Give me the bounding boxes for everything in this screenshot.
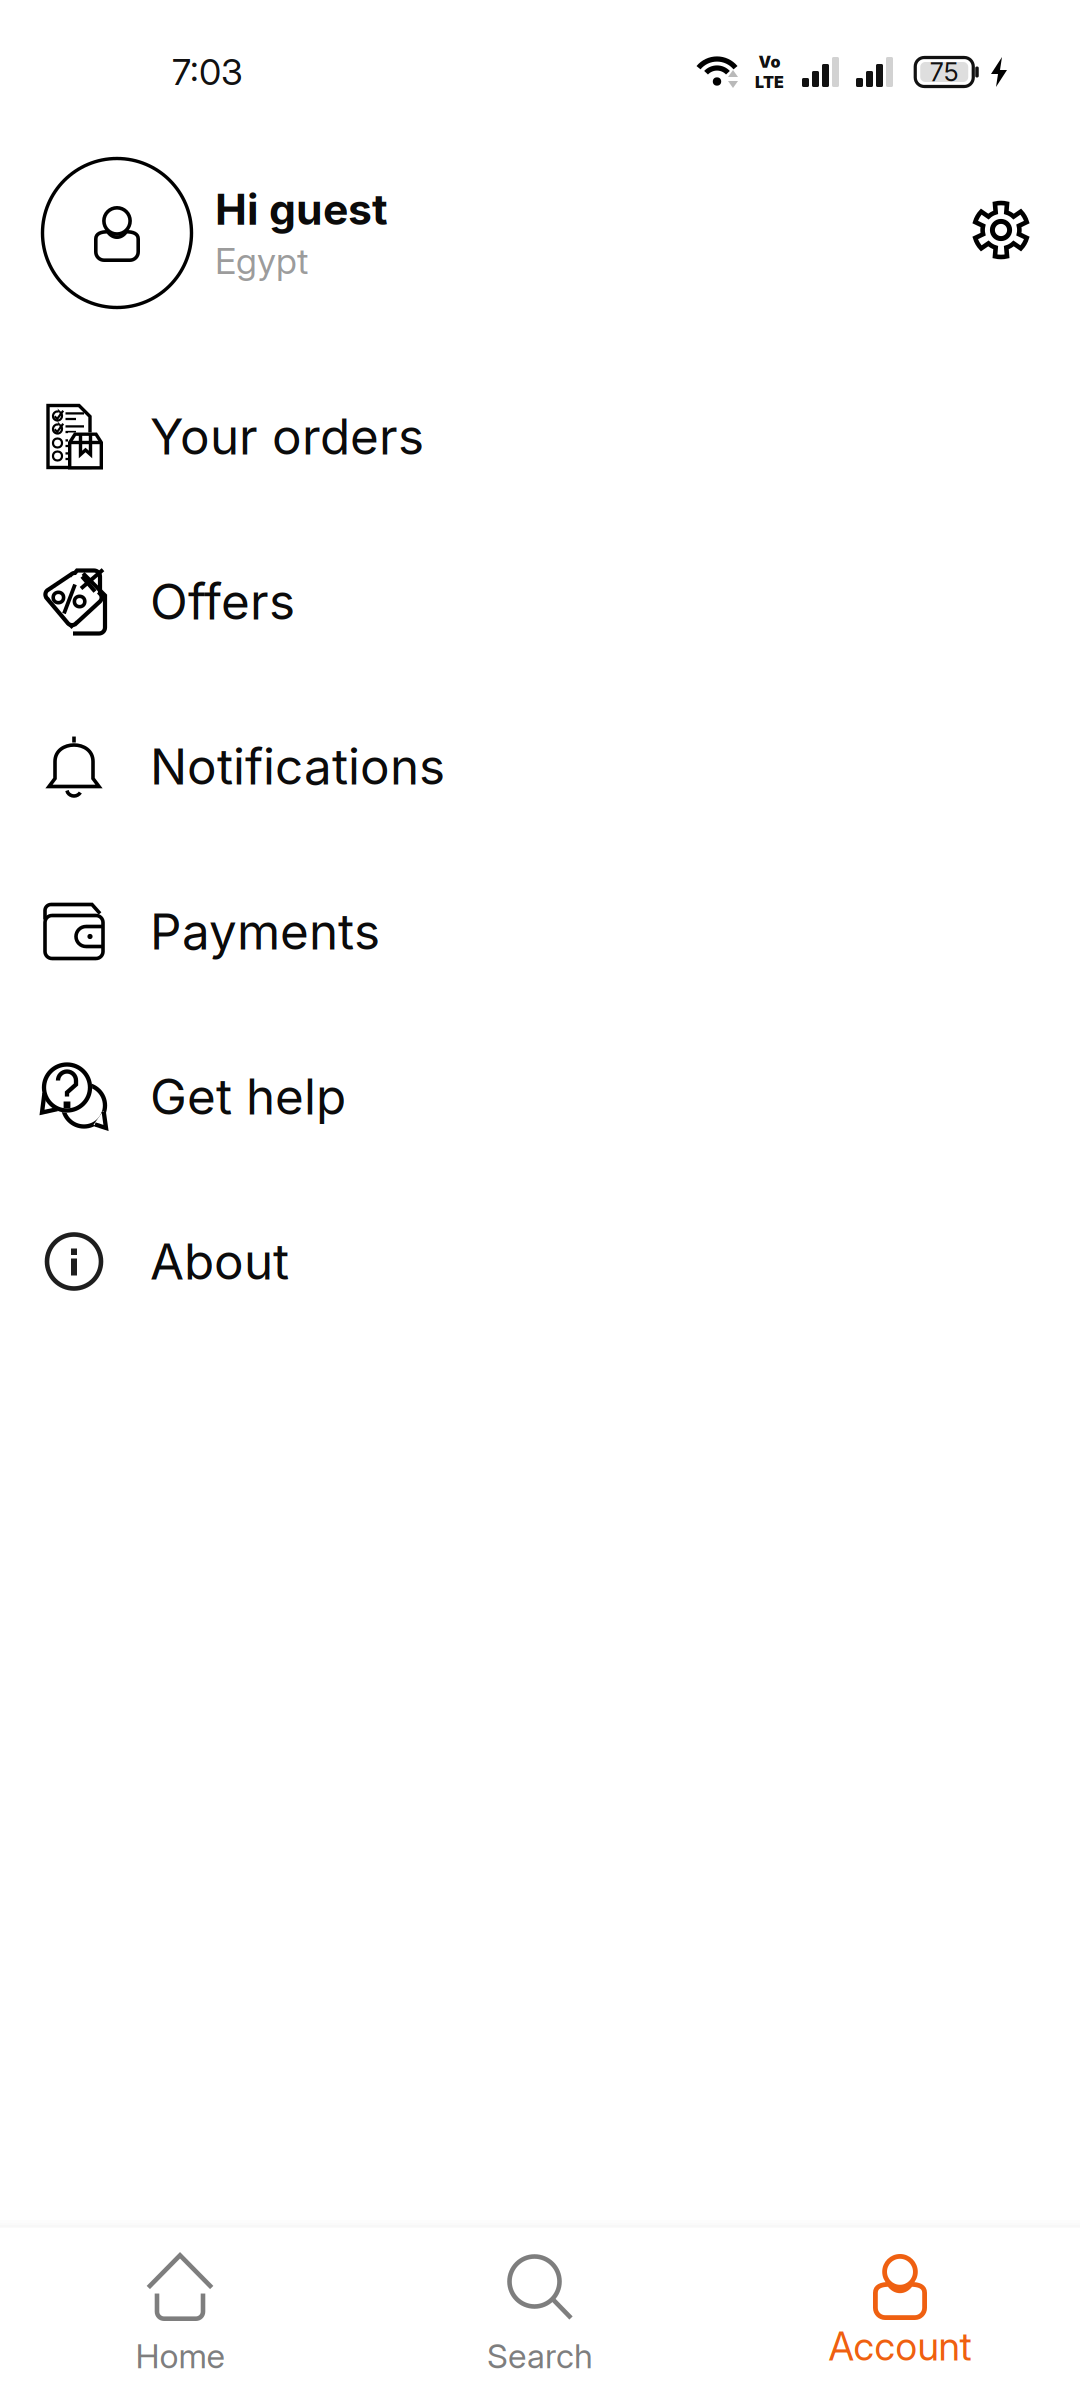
button[interactable]: Offers <box>0 519 1080 684</box>
staticText: Hi guest <box>215 183 388 235</box>
staticText: Get help <box>150 1067 346 1126</box>
staticText: 75 <box>930 57 959 87</box>
button[interactable]: Account <box>720 2224 1080 2400</box>
staticText: Search <box>487 2336 593 2376</box>
staticText: 7:03 <box>172 50 243 94</box>
staticText: Offers <box>150 572 295 631</box>
button[interactable]: Search <box>360 2224 720 2400</box>
staticText: Vo <box>758 52 780 71</box>
staticText: Your orders <box>150 407 424 466</box>
button[interactable]: Payments <box>0 849 1080 1014</box>
staticText: Egypt <box>215 239 308 283</box>
staticText: About <box>150 1232 289 1291</box>
button[interactable]: Your orders <box>0 354 1080 519</box>
button[interactable]: Notifications <box>0 684 1080 849</box>
staticText: Payments <box>150 902 380 961</box>
button[interactable]: Get help <box>0 1014 1080 1179</box>
staticText: LTE <box>755 72 784 92</box>
button[interactable]: About <box>0 1179 1080 1344</box>
button[interactable]: Settings <box>954 187 1046 279</box>
staticText: Notifications <box>150 737 445 796</box>
staticText: Account <box>828 2323 971 2370</box>
staticText: Home <box>135 2336 224 2376</box>
button[interactable]: Hi guest <box>42 158 954 308</box>
button[interactable]: Home <box>0 2224 360 2400</box>
